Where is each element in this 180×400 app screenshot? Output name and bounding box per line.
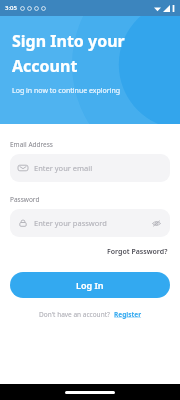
staticText: Don't have an account? — [39, 310, 114, 319]
button[interactable]: Enter your email — [10, 154, 170, 182]
staticText: Enter your password — [34, 218, 107, 228]
staticText: Sign Into your — [12, 30, 125, 52]
staticText: Log in now to continue exploring — [12, 86, 121, 96]
staticText: Enter your email — [34, 163, 93, 173]
staticText: Password — [10, 195, 40, 204]
staticText: 3:05 — [5, 4, 17, 12]
button[interactable]: Forgot Password? — [105, 245, 170, 259]
staticText: Email Address — [10, 140, 53, 149]
staticText: Register — [114, 310, 142, 319]
button[interactable]: Register — [114, 310, 142, 319]
button[interactable]: Enter your password — [10, 209, 170, 237]
staticText: Account — [12, 55, 78, 77]
staticText: Forgot Password? — [107, 247, 168, 257]
staticText: Log In — [76, 279, 104, 291]
button[interactable]: Log In — [10, 272, 170, 298]
button[interactable]: Show password — [150, 217, 162, 229]
